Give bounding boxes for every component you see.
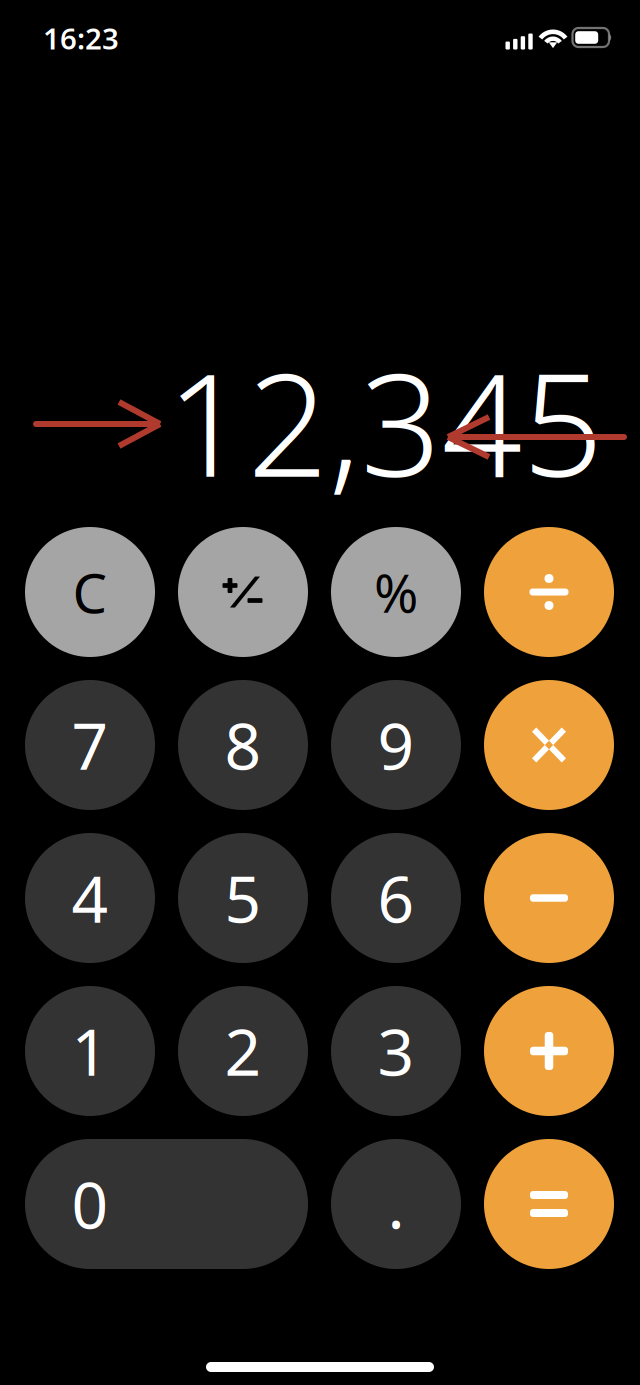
staticText: 6 <box>377 855 414 940</box>
staticText: % <box>374 557 418 627</box>
button[interactable]: 1 <box>25 986 155 1116</box>
button[interactable] <box>484 1139 614 1269</box>
staticText: C <box>72 556 107 628</box>
button[interactable] <box>484 527 614 657</box>
button[interactable]: 6 <box>331 833 461 963</box>
staticText: 1 <box>71 1008 108 1093</box>
button[interactable]: 4 <box>25 833 155 963</box>
staticText: 3 <box>377 1008 414 1093</box>
staticText: 0 <box>71 1161 108 1246</box>
staticText: 5 <box>224 855 261 940</box>
staticText: 7 <box>71 702 108 787</box>
button[interactable]: 0 <box>25 1139 308 1269</box>
staticText: 12,345 <box>166 328 603 516</box>
staticText: 8 <box>224 702 261 787</box>
button[interactable] <box>484 833 614 963</box>
button[interactable]: C <box>25 527 155 657</box>
staticText: 2 <box>224 1008 261 1093</box>
button[interactable] <box>484 680 614 810</box>
button[interactable]: 8 <box>178 680 308 810</box>
button[interactable]: 2 <box>178 986 308 1116</box>
button[interactable]: 3 <box>331 986 461 1116</box>
staticText: 9 <box>377 702 414 787</box>
button[interactable]: . <box>331 1139 461 1269</box>
button[interactable] <box>178 527 308 657</box>
button[interactable]: % <box>331 527 461 657</box>
staticText: 4 <box>71 855 108 940</box>
staticText: . <box>387 1161 404 1246</box>
staticText: 16:23 <box>43 18 119 57</box>
button[interactable]: 9 <box>331 680 461 810</box>
button[interactable]: 7 <box>25 680 155 810</box>
button[interactable]: 5 <box>178 833 308 963</box>
button[interactable] <box>484 986 614 1116</box>
